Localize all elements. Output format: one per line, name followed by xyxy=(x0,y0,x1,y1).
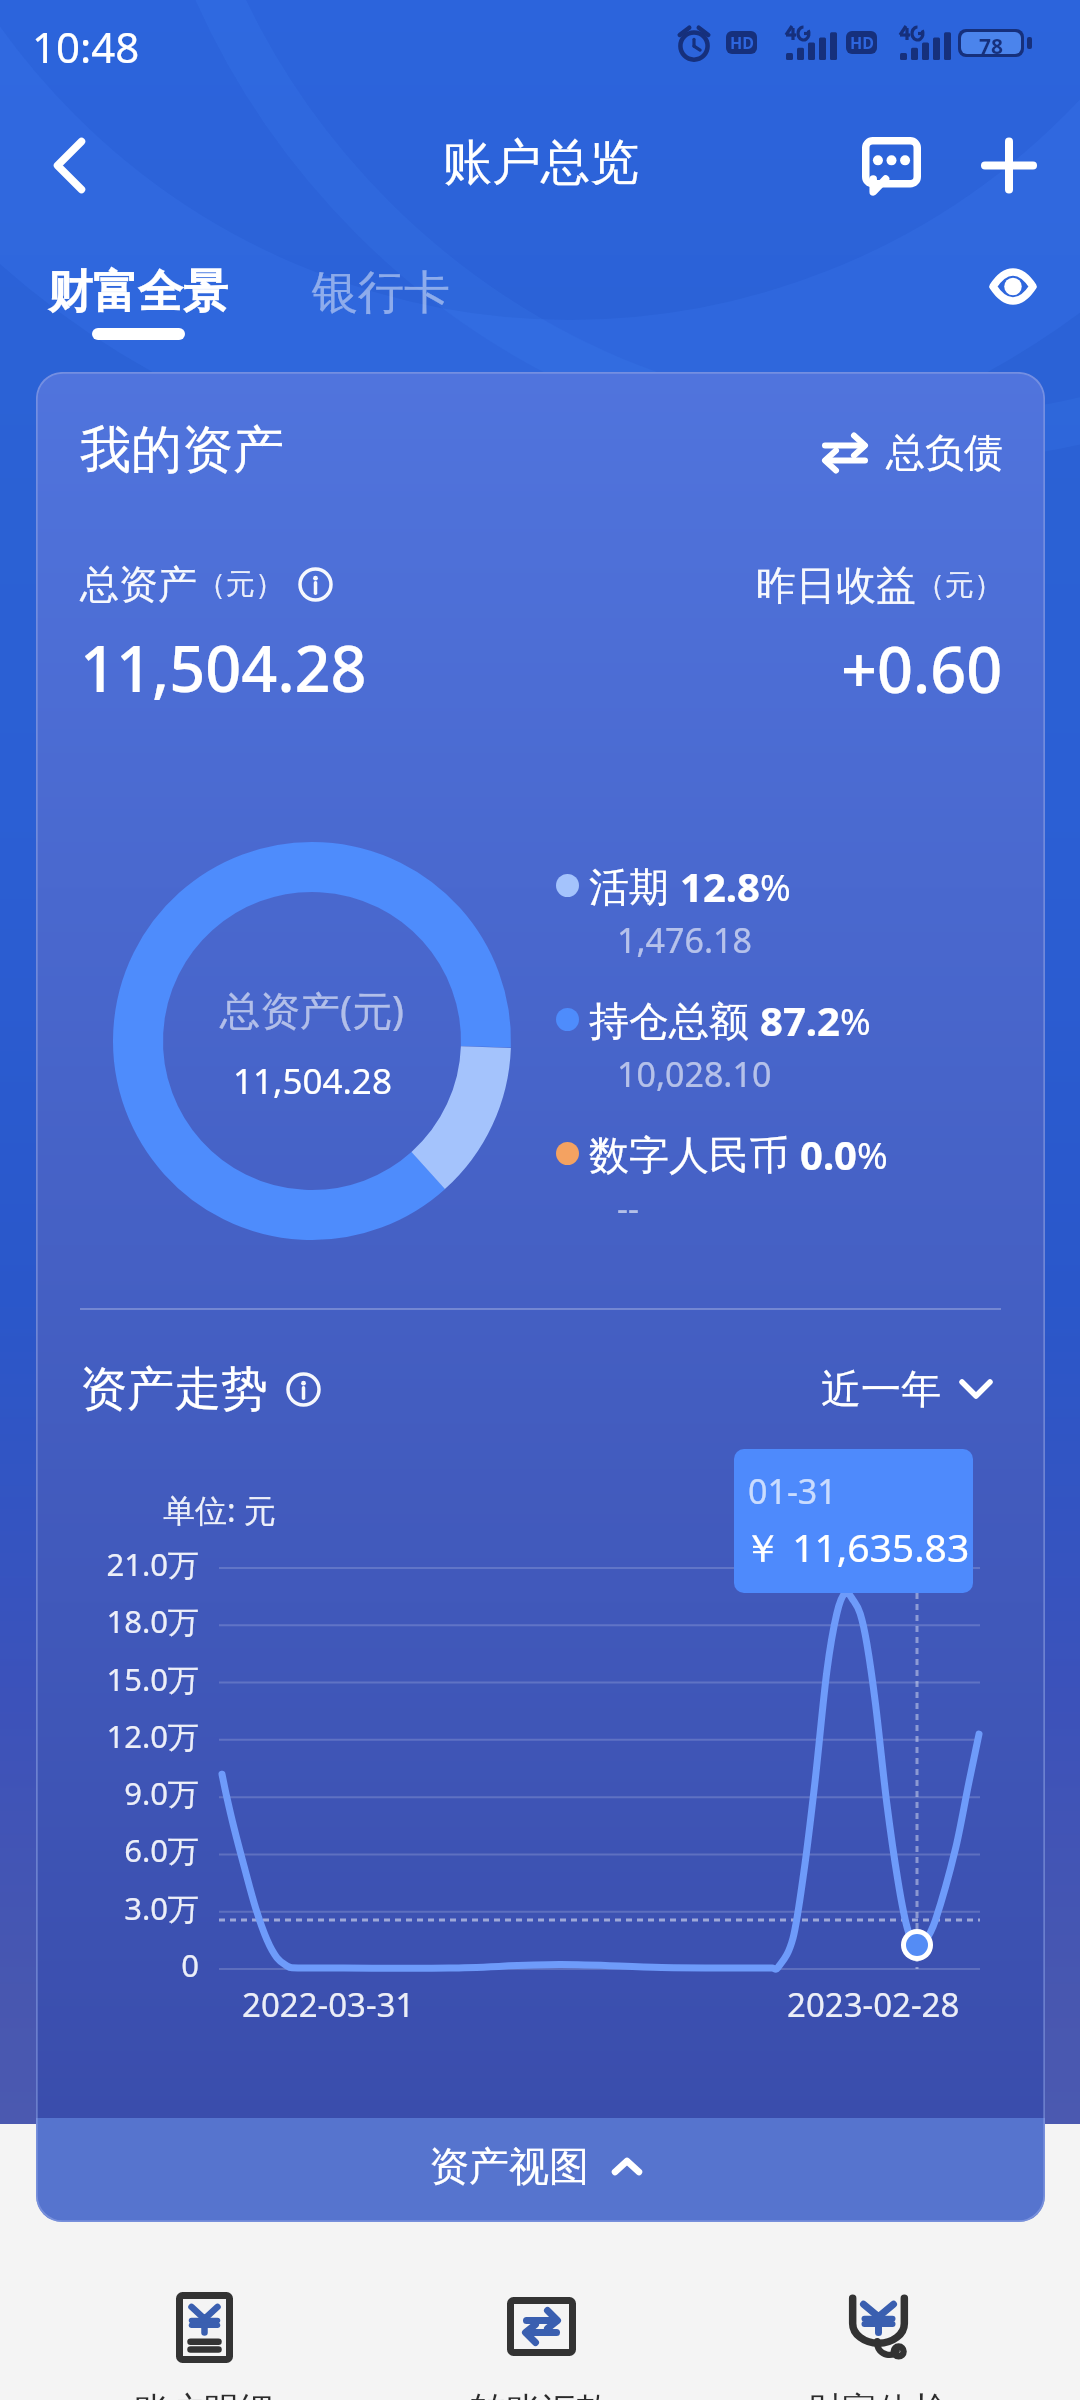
staticText: 9.0万 xyxy=(124,1772,199,1814)
staticText: ￥ 11,635.83 xyxy=(743,1520,970,1573)
staticText: 3.0万 xyxy=(124,1887,199,1929)
staticText: 账户总览 xyxy=(443,132,639,194)
staticText: 资产走势 xyxy=(80,1360,268,1419)
staticText: 账户明细 xyxy=(134,2388,274,2400)
staticText: 资产视图 xyxy=(429,2141,589,2191)
staticText: （元） xyxy=(916,567,1003,604)
staticText: 银行卡 xyxy=(312,264,450,322)
staticText: 10:48 xyxy=(32,18,140,75)
staticText: 15.0万 xyxy=(106,1658,199,1700)
staticText: 近一年 xyxy=(821,1364,941,1414)
button[interactable]: 转账汇款 xyxy=(413,2270,669,2400)
staticText: 0 xyxy=(181,1944,199,1986)
button[interactable]: Back xyxy=(27,123,111,207)
button[interactable]: 账户明细 xyxy=(76,2270,332,2400)
button[interactable]: Messages xyxy=(849,124,933,206)
staticText: 财富全景 xyxy=(48,264,228,321)
staticText: 持仓总额 xyxy=(589,992,760,1047)
button[interactable]: Total assets info xyxy=(298,567,333,602)
staticText: 活期 xyxy=(589,858,680,913)
button[interactable]: 银行卡 xyxy=(312,264,450,322)
staticText: 财富体检 xyxy=(808,2388,948,2400)
staticText: 11,504.28 xyxy=(233,1057,392,1105)
staticText: % xyxy=(840,995,871,1045)
staticText: 2023-02-28 xyxy=(787,1982,960,2027)
staticText: +0.60 xyxy=(841,626,1003,712)
staticText: 12.0万 xyxy=(106,1715,199,1757)
button[interactable]: 财富全景 xyxy=(48,264,228,340)
staticText: 6.0万 xyxy=(124,1829,199,1871)
button[interactable]: 总负债 xyxy=(822,428,1003,477)
button[interactable]: 资产视图 xyxy=(36,2118,1045,2222)
staticText: 78 xyxy=(979,32,1004,54)
button[interactable]: Add xyxy=(964,123,1048,207)
staticText: % xyxy=(760,861,791,911)
staticText: 21.0万 xyxy=(106,1543,199,1585)
button[interactable]: 财富体检 xyxy=(750,2270,1006,2400)
staticText: 1,476.18 xyxy=(617,917,752,963)
staticText: HD xyxy=(730,32,754,54)
staticText: -- xyxy=(617,1185,639,1231)
staticText: 转账汇款 xyxy=(471,2388,611,2400)
staticText: 11,504.28 xyxy=(80,625,367,711)
staticText: 12.8 xyxy=(680,859,760,913)
staticText: 总资产 xyxy=(80,560,197,609)
button[interactable]: Trend info xyxy=(286,1372,321,1407)
staticText: 87.2 xyxy=(760,993,840,1047)
staticText: % xyxy=(857,1129,888,1179)
staticText: 昨日收益 xyxy=(756,560,916,610)
staticText: （元） xyxy=(197,566,284,603)
staticText: 我的资产 xyxy=(80,418,284,482)
staticText: 2022-03-31 xyxy=(242,1982,415,2027)
staticText: 0.0 xyxy=(800,1127,857,1181)
button[interactable]: 近一年 xyxy=(821,1364,993,1414)
staticText: 01-31 xyxy=(748,1468,837,1514)
staticText: 总资产(元) xyxy=(220,982,404,1037)
staticText: HD xyxy=(850,32,874,54)
staticText: 单位: 元 xyxy=(163,1488,276,1532)
button[interactable]: Toggle balance visibility xyxy=(972,246,1052,326)
staticText: 总负债 xyxy=(886,428,1003,477)
staticText: 18.0万 xyxy=(106,1600,199,1642)
staticText: 数字人民币 xyxy=(589,1126,800,1181)
staticText: 10,028.10 xyxy=(617,1051,772,1097)
